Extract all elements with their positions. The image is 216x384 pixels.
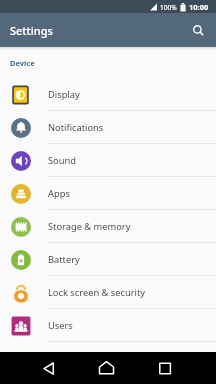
staticText: Apps bbox=[48, 187, 70, 200]
button[interactable]: Users bbox=[0, 309, 216, 342]
staticText: Users bbox=[48, 319, 73, 332]
button[interactable]: Notifications bbox=[0, 111, 216, 144]
staticText: Sound bbox=[48, 154, 76, 167]
staticText: Lock screen & security bbox=[48, 286, 146, 299]
staticText: Settings bbox=[10, 23, 53, 38]
button[interactable] bbox=[0, 352, 72, 384]
staticText: Battery bbox=[48, 253, 80, 266]
button[interactable]: Apps bbox=[0, 177, 216, 210]
button[interactable]: Battery bbox=[0, 243, 216, 276]
staticText: Display bbox=[48, 88, 80, 101]
staticText: Device bbox=[10, 58, 35, 68]
staticText: Storage & memory bbox=[48, 220, 131, 233]
staticText: Notifications bbox=[48, 121, 104, 134]
button[interactable] bbox=[72, 352, 144, 384]
button[interactable] bbox=[192, 24, 205, 37]
staticText: 100% bbox=[160, 3, 177, 12]
button[interactable] bbox=[144, 352, 216, 384]
button[interactable]: Sound bbox=[0, 144, 216, 177]
button[interactable]: Lock screen & security bbox=[0, 276, 216, 309]
button[interactable]: Display bbox=[0, 78, 216, 111]
button[interactable]: Storage & memory bbox=[0, 210, 216, 243]
staticText: 10:00 bbox=[189, 2, 209, 12]
